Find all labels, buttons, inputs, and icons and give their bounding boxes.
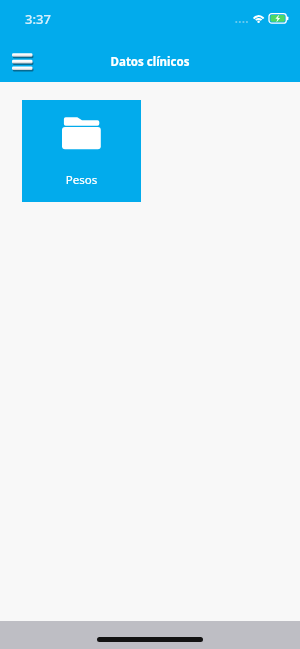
button[interactable]: Open navigation menu bbox=[6, 47, 38, 77]
button[interactable]: Pesos bbox=[22, 100, 141, 202]
staticText: 3:37 bbox=[25, 10, 51, 28]
button[interactable]: Home gesture handle bbox=[97, 629, 203, 644]
staticText: Pesos bbox=[22, 172, 141, 188]
staticText: Datos clínicos bbox=[0, 54, 300, 70]
